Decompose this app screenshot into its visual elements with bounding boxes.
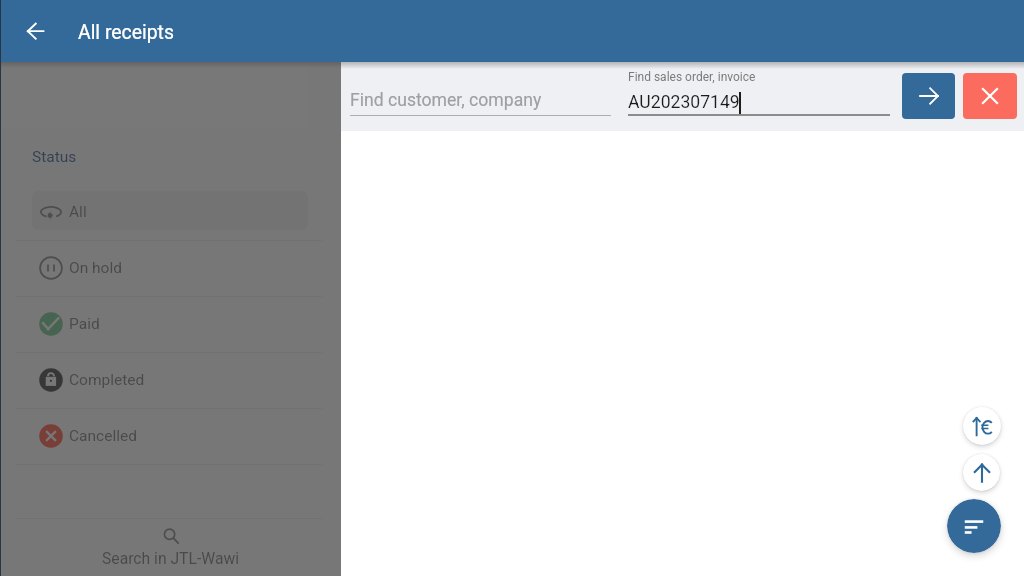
button[interactable]: Sort <box>947 499 1001 553</box>
staticText: On hold <box>69 259 122 277</box>
staticText: Completed <box>69 371 145 389</box>
staticText: Cancelled <box>69 427 137 445</box>
button[interactable]: Sort ascending <box>963 454 1000 491</box>
staticText: AU202307149 <box>628 92 740 113</box>
staticText: All receipts <box>78 21 174 44</box>
staticText: Paid <box>69 315 100 333</box>
button[interactable]: On hold <box>32 248 308 288</box>
button[interactable]: Search in JTL-Wawi <box>0 519 341 576</box>
button[interactable]: Find customer, company <box>350 62 611 131</box>
button[interactable]: Close search <box>963 73 1017 119</box>
button[interactable]: Completed <box>32 360 308 400</box>
button[interactable]: All <box>32 192 308 232</box>
staticText: Search in JTL-Wawi <box>102 549 240 567</box>
button[interactable]: Sort by amount <box>963 407 1001 445</box>
button[interactable]: Find sales order, invoice <box>628 62 890 131</box>
button[interactable]: Paid <box>32 304 308 344</box>
button[interactable]: Search <box>902 73 955 119</box>
button[interactable]: Cancelled <box>32 416 308 456</box>
staticText: All <box>69 203 87 221</box>
button[interactable]: Back <box>18 14 54 50</box>
staticText: Find customer, company <box>350 90 542 111</box>
staticText: Find sales order, invoice <box>628 70 756 84</box>
staticText: Status <box>32 148 77 166</box>
